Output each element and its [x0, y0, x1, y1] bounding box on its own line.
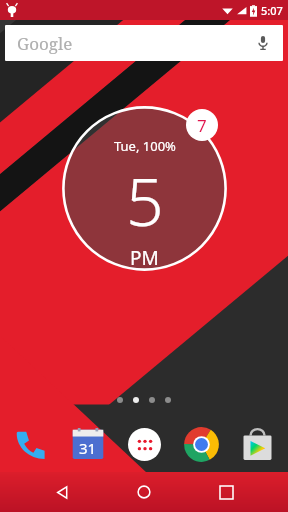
- other: Voice search: [255, 35, 271, 51]
- button[interactable]: Tue, 100%: [61, 105, 228, 272]
- staticText: PM: [130, 245, 159, 271]
- button[interactable]: Recents: [206, 472, 246, 512]
- staticText: 31: [79, 438, 97, 458]
- staticText: Google: [17, 32, 73, 55]
- button[interactable]: Home: [124, 472, 164, 512]
- button[interactable]: Calendar: [65, 421, 111, 467]
- staticText: Tue, 100%: [114, 137, 176, 155]
- button[interactable]: 7: [186, 109, 218, 141]
- button[interactable]: Chrome: [178, 421, 224, 467]
- button[interactable]: Back: [42, 472, 82, 512]
- button[interactable]: Play Store: [234, 421, 280, 467]
- button[interactable]: Phone: [8, 421, 54, 467]
- staticText: 5:07: [261, 3, 283, 18]
- button[interactable]: Apps: [121, 421, 167, 467]
- button[interactable]: Google: [5, 25, 283, 61]
- staticText: 5: [126, 155, 164, 245]
- staticText: 7: [197, 114, 207, 137]
